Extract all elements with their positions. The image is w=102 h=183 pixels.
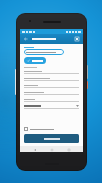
button[interactable]: Home <box>49 147 54 152</box>
button[interactable] <box>24 99 79 102</box>
button[interactable] <box>24 78 79 81</box>
button[interactable] <box>24 127 79 131</box>
button[interactable]: More options <box>74 36 80 42</box>
button[interactable] <box>24 71 79 74</box>
button[interactable] <box>24 49 64 55</box>
button[interactable] <box>24 57 46 64</box>
button[interactable]: Recent apps <box>66 147 71 152</box>
button[interactable] <box>24 134 79 143</box>
button[interactable] <box>24 92 79 95</box>
button[interactable]: Back <box>23 36 29 42</box>
button[interactable] <box>24 85 79 88</box>
button[interactable] <box>24 105 79 107</box>
button[interactable]: Back <box>32 147 37 152</box>
